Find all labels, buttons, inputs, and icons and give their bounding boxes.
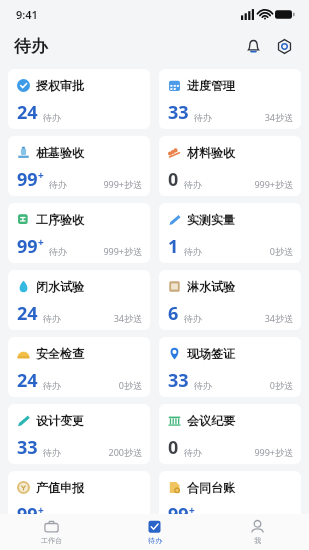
staticText: 进度管理 (187, 78, 235, 93)
staticText: 999+抄送 (103, 245, 142, 257)
staticText: + (38, 235, 44, 249)
staticText: 999+抄送 (254, 446, 293, 458)
staticText: + (38, 503, 44, 517)
staticText: 待办 (49, 179, 67, 190)
staticText: + (189, 503, 195, 517)
button[interactable]: 闭水试验 (8, 270, 150, 330)
button[interactable]: Settings (273, 35, 295, 57)
staticText: 设计变更 (36, 413, 84, 428)
staticText: 34抄送 (264, 111, 293, 123)
staticText: 待办 (184, 313, 202, 324)
button[interactable]: 产值申报 (8, 471, 150, 531)
staticText: 9:41 (16, 7, 38, 22)
staticText: 待办 (49, 246, 67, 257)
staticText: 999+抄送 (103, 178, 142, 190)
staticText: 待办 (194, 112, 212, 123)
button[interactable]: 进度管理 (159, 69, 301, 129)
button[interactable]: Notifications (242, 35, 264, 57)
button[interactable]: 安全检查 (8, 337, 150, 397)
button[interactable]: 会议纪要 (159, 404, 301, 464)
staticText: 闭水试验 (36, 279, 84, 294)
staticText: 0抄送 (269, 245, 293, 257)
button[interactable]: 设计变更 (8, 404, 150, 464)
staticText: 待办 (43, 112, 61, 123)
staticText: 会议纪要 (187, 413, 235, 428)
staticText: 合同台账 (187, 480, 235, 495)
staticText: 24 (17, 301, 38, 326)
staticText: 0 (168, 435, 179, 460)
staticText: 工序验收 (36, 212, 84, 227)
button[interactable]: 授权审批 (8, 69, 150, 129)
staticText: 0抄送 (118, 379, 142, 391)
button[interactable]: 工作台 (0, 514, 103, 550)
button[interactable]: 实测实量 (159, 203, 301, 263)
staticText: 待办 (184, 179, 202, 190)
staticText: 安全检查 (36, 346, 84, 361)
staticText: 待办 (43, 447, 61, 458)
button[interactable]: 淋水试验 (159, 270, 301, 330)
staticText: 待办 (184, 246, 202, 257)
staticText: 33 (17, 435, 38, 460)
staticText: 桩基验收 (36, 145, 84, 160)
staticText: 99 (17, 167, 38, 192)
staticText: 33 (168, 100, 189, 125)
staticText: 999+抄送 (254, 178, 293, 190)
button[interactable]: 我 (206, 514, 309, 550)
staticText: 待办 (184, 447, 202, 458)
staticText: 34抄送 (264, 312, 293, 324)
button[interactable]: 合同台账 (159, 471, 301, 531)
staticText: 待办 (148, 536, 162, 545)
staticText: 产值申报 (36, 480, 84, 495)
staticText: 1 (168, 234, 179, 259)
staticText: 待办 (43, 313, 61, 324)
staticText: 0抄送 (269, 379, 293, 391)
staticText: 24 (17, 368, 38, 393)
staticText: 999+抄送 (254, 513, 293, 525)
staticText: 99 (17, 502, 38, 527)
staticText: 实测实量 (187, 212, 235, 227)
staticText: 授权审批 (36, 78, 84, 93)
staticText: 材料验收 (187, 145, 235, 160)
staticText: 淋水试验 (187, 279, 235, 294)
button[interactable]: 待办 (103, 514, 206, 550)
staticText: 我 (254, 536, 261, 545)
staticText: 200抄送 (108, 446, 142, 458)
staticText: 待办 (49, 514, 67, 525)
button[interactable]: 现场签证 (159, 337, 301, 397)
staticText: 待办 (14, 36, 48, 57)
staticText: 24 (17, 100, 38, 125)
button[interactable]: 材料验收 (159, 136, 301, 196)
staticText: 0 (168, 167, 179, 192)
staticText: + (38, 168, 44, 182)
staticText: 工作台 (41, 536, 62, 545)
button[interactable]: 桩基验收 (8, 136, 150, 196)
staticText: 现场签证 (187, 346, 235, 361)
staticText: 99 (168, 502, 189, 527)
staticText: 33 (168, 368, 189, 393)
staticText: 6 (168, 301, 179, 326)
staticText: 待办 (194, 380, 212, 391)
staticText: 34抄送 (113, 312, 142, 324)
staticText: 99 (17, 234, 38, 259)
button[interactable]: 工序验收 (8, 203, 150, 263)
staticText: 待办 (43, 380, 61, 391)
